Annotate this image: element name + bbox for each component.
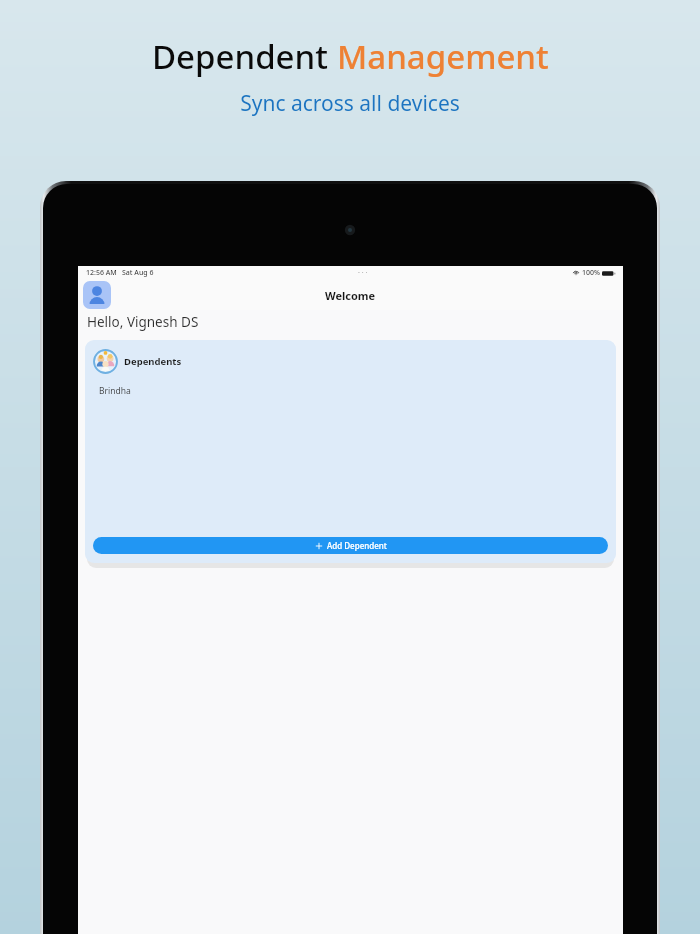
staticText: · · · <box>358 268 368 278</box>
staticText: Dependents <box>124 355 182 368</box>
staticText: Management <box>337 34 549 79</box>
staticText: Dependent <box>152 34 337 79</box>
staticText: Welcome <box>325 288 376 303</box>
staticText: Sync across all devices <box>240 89 460 118</box>
staticText: 100% <box>582 268 600 278</box>
staticText: Hello, Vignesh DS <box>87 313 199 331</box>
staticText: 12:56 AM <box>86 268 117 278</box>
staticText: Sat Aug 6 <box>122 268 154 278</box>
staticText: Add Dependent <box>327 540 387 551</box>
staticText: Brindha <box>99 385 131 397</box>
button[interactable]: Profile <box>83 281 111 309</box>
button[interactable]: Add Dependent <box>93 537 608 554</box>
